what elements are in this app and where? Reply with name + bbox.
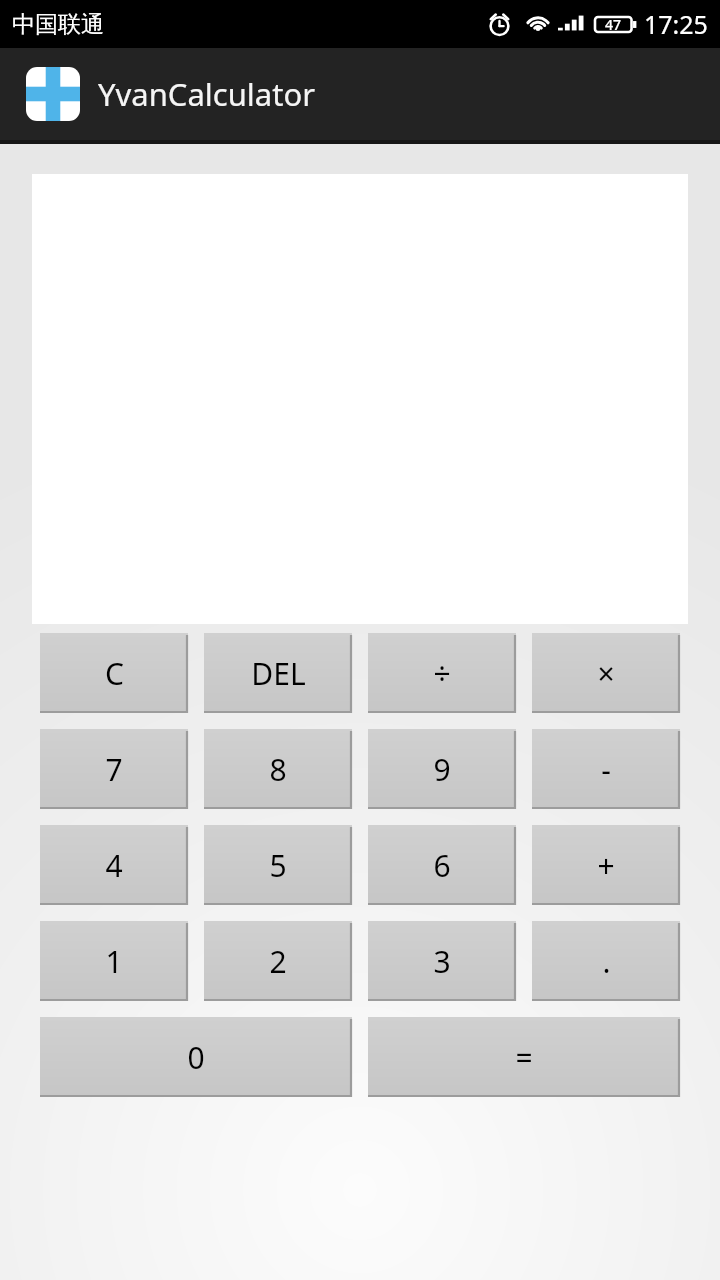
- staticText: 2: [269, 941, 287, 982]
- staticText: 4: [105, 845, 123, 886]
- button[interactable]: =: [368, 1017, 680, 1097]
- staticText: 1: [105, 941, 123, 982]
- button[interactable]: ×: [532, 633, 680, 713]
- button[interactable]: 4: [40, 825, 188, 905]
- button[interactable]: .: [532, 921, 680, 1001]
- other: Alarm: [486, 11, 513, 38]
- staticText: -: [601, 749, 611, 790]
- button[interactable]: 9: [368, 729, 516, 809]
- button[interactable]: -: [532, 729, 680, 809]
- other: Battery 47 percent: [595, 12, 637, 37]
- button[interactable]: DEL: [204, 633, 352, 713]
- button[interactable]: 2: [204, 921, 352, 1001]
- button[interactable]: ÷: [368, 633, 516, 713]
- button[interactable]: 5: [204, 825, 352, 905]
- button[interactable]: 7: [40, 729, 188, 809]
- button[interactable]: +: [532, 825, 680, 905]
- button[interactable]: 8: [204, 729, 352, 809]
- staticText: C: [105, 653, 124, 694]
- staticText: +: [597, 845, 615, 886]
- staticText: 7: [105, 749, 123, 790]
- staticText: .: [602, 941, 611, 982]
- staticText: 3: [433, 941, 451, 982]
- staticText: 9: [433, 749, 451, 790]
- staticText: 8: [269, 749, 287, 790]
- staticText: ×: [597, 653, 615, 694]
- other: Signal strength: [557, 11, 587, 38]
- staticText: ÷: [433, 653, 451, 694]
- button[interactable]: 1: [40, 921, 188, 1001]
- staticText: =: [515, 1037, 533, 1078]
- button[interactable]: 6: [368, 825, 516, 905]
- button[interactable]: C: [40, 633, 188, 713]
- staticText: DEL: [251, 653, 306, 694]
- button[interactable]: 3: [368, 921, 516, 1001]
- other: Wi-Fi: [524, 10, 552, 38]
- staticText: 47: [605, 15, 622, 34]
- button[interactable]: 0: [40, 1017, 352, 1097]
- staticText: 中国联通: [12, 10, 104, 39]
- staticText: 6: [433, 845, 451, 886]
- staticText: 17:25: [644, 7, 708, 41]
- staticText: 5: [269, 845, 287, 886]
- staticText: YvanCalculator: [98, 73, 315, 115]
- staticText: 0: [187, 1037, 205, 1078]
